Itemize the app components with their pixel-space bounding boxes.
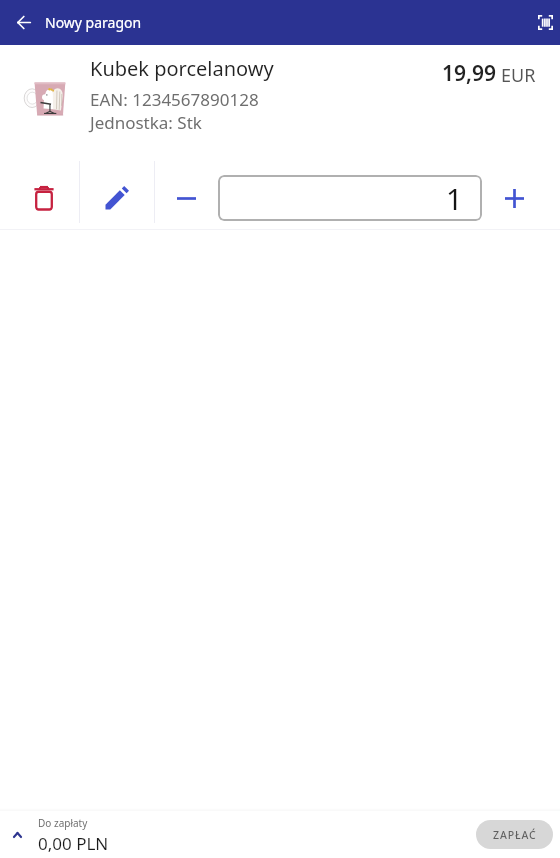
button[interactable]: Decrease quantity bbox=[155, 167, 218, 229]
button[interactable]: Scan barcode bbox=[515, 0, 560, 45]
button[interactable]: Back bbox=[0, 0, 45, 45]
button[interactable]: Kubek porcelanowy bbox=[0, 45, 560, 152]
staticText: Do zapłaty bbox=[38, 816, 88, 830]
button[interactable]: Increase quantity bbox=[482, 167, 546, 229]
staticText: EAN: 1234567890128 bbox=[90, 88, 259, 111]
staticText: Kubek porcelanowy bbox=[90, 55, 274, 82]
button[interactable]: Edit bbox=[80, 167, 154, 229]
staticText: Nowy paragon bbox=[45, 13, 142, 32]
staticText: ZAPŁAĆ bbox=[493, 828, 537, 842]
staticText: 0,00 PLN bbox=[38, 832, 109, 855]
staticText: 1 bbox=[446, 179, 463, 218]
button[interactable]: 1 bbox=[218, 175, 482, 221]
staticText: 19,99 bbox=[442, 59, 496, 88]
staticText: Jednostka: Stk bbox=[90, 111, 202, 134]
staticText: EUR bbox=[501, 63, 536, 88]
button[interactable]: Expand summary bbox=[0, 811, 38, 858]
button[interactable]: ZAPŁAĆ bbox=[476, 820, 553, 849]
button[interactable]: Delete bbox=[0, 167, 79, 229]
